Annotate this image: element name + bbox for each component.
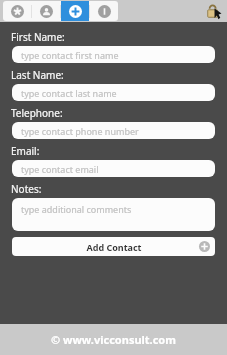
button[interactable]: Add Contact [12,237,215,256]
staticText: First Name: [11,30,65,44]
staticText: type additional comments [21,203,132,215]
button[interactable]: Contacts [32,1,60,21]
button[interactable]: Add contact [61,1,89,21]
button[interactable]: type contact last name [12,84,215,101]
staticText: type contact first name [21,49,119,61]
button[interactable]: type contact email [12,160,215,177]
staticText: © www.vicconsult.com [51,332,176,347]
staticText: type contact email [21,163,99,175]
staticText: Last Name: [11,68,64,82]
staticText: Email: [11,144,40,158]
button[interactable]: type additional comments [12,198,215,231]
staticText: type contact last name [21,87,117,99]
staticText: Notes: [11,182,42,196]
staticText: Telephone: [11,106,63,120]
button[interactable]: type contact phone number [12,122,215,139]
button[interactable]: type contact first name [12,46,215,63]
staticText: Add Contact [86,241,142,253]
button[interactable]: Info [90,1,118,21]
button[interactable]: Favorites [3,1,31,21]
staticText: type contact phone number [21,125,139,137]
button[interactable]: Secure lock [205,3,222,20]
